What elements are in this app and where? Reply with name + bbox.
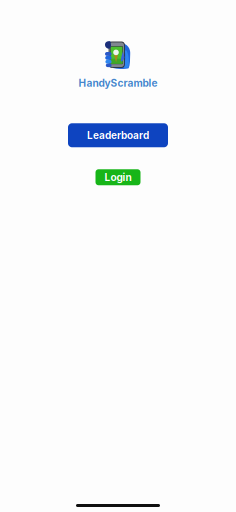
button[interactable]: Login [95, 169, 140, 185]
staticText: Leaderboard [87, 129, 149, 141]
staticText: Login [104, 171, 131, 183]
button[interactable]: Leaderboard [68, 123, 168, 147]
staticText: HandyScramble [78, 77, 157, 89]
